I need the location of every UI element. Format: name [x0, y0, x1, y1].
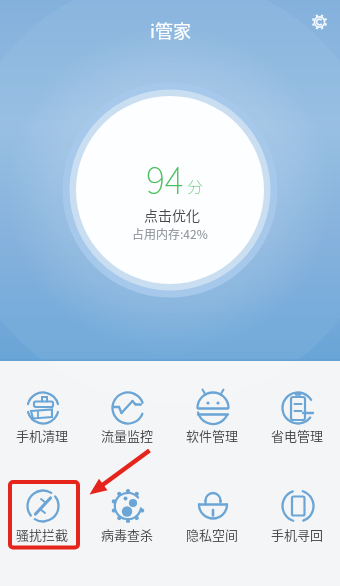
staticText: 骚扰拦截	[16, 525, 69, 544]
button[interactable]: 隐私空间	[170, 488, 255, 544]
staticText: 94	[146, 152, 184, 204]
button[interactable]: 骚扰拦截	[0, 488, 85, 544]
staticText: 点击优化	[144, 205, 200, 225]
staticText: 分	[187, 174, 204, 197]
button[interactable]	[306, 8, 334, 36]
staticText: 手机清理	[16, 426, 69, 445]
staticText: 省电管理	[271, 426, 324, 445]
staticText: 软件管理	[186, 426, 239, 445]
staticText: 流量监控	[101, 426, 154, 445]
button[interactable]: 手机寻回	[255, 488, 340, 544]
button[interactable]: 软件管理	[170, 390, 255, 445]
button[interactable]: 病毒查杀	[85, 488, 170, 544]
staticText: i管家	[150, 17, 191, 43]
button[interactable]	[76, 96, 264, 284]
button[interactable]: 手机清理	[0, 390, 85, 445]
button[interactable]: 流量监控	[85, 390, 170, 445]
button[interactable]: 省电管理	[255, 390, 340, 445]
staticText: 病毒查杀	[101, 525, 154, 544]
staticText: 手机寻回	[271, 525, 324, 544]
staticText: 隐私空间	[186, 525, 239, 544]
staticText: 占用内存:42%	[132, 225, 208, 242]
